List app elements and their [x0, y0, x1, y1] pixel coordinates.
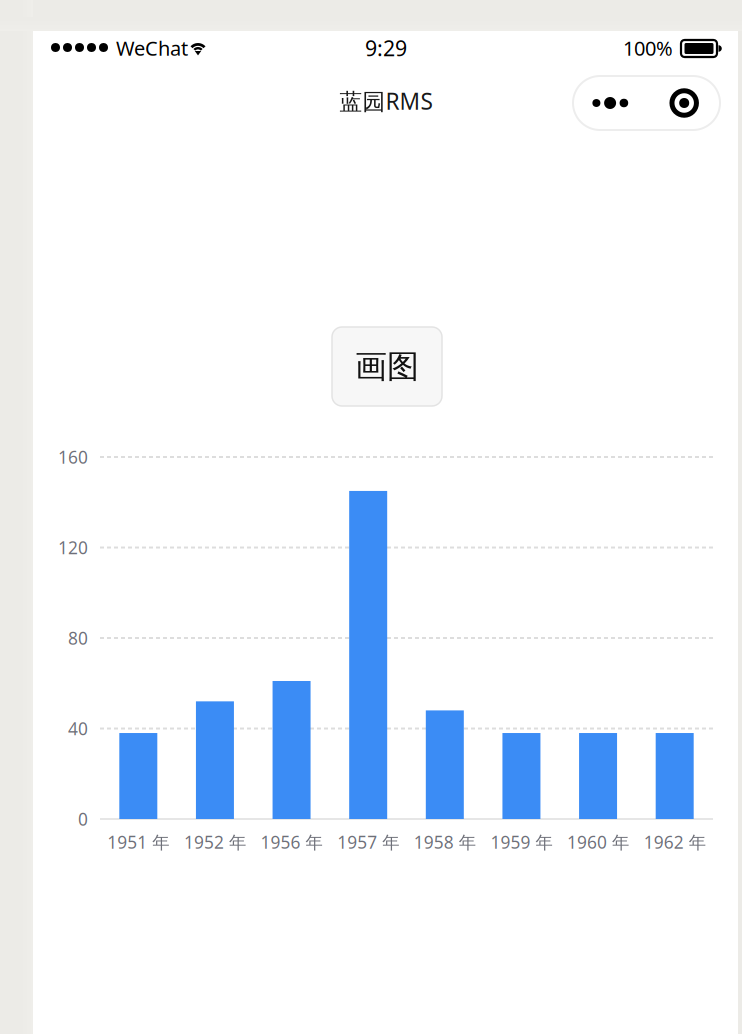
staticText: 40 — [68, 717, 88, 740]
staticText: 160 — [58, 445, 88, 468]
staticText: 1956 年 — [261, 830, 323, 853]
button[interactable]: 画图 — [332, 327, 442, 406]
staticText: 80 — [68, 626, 88, 649]
staticText: 1959 年 — [490, 830, 552, 853]
staticText: 0 — [78, 807, 88, 830]
staticText: 9:29 — [365, 34, 407, 62]
staticText: 1951 年 — [107, 830, 169, 853]
button[interactable]: More options and close — [573, 76, 720, 130]
staticText: 1960 年 — [567, 830, 629, 853]
staticText: 100% — [623, 35, 673, 61]
staticText: 画图 — [355, 347, 419, 386]
staticText: 蓝园RMS — [339, 86, 432, 116]
staticText: 1958 年 — [414, 830, 476, 853]
staticText: WeChat — [116, 35, 188, 61]
staticText: 1952 年 — [184, 830, 246, 853]
staticText: 1957 年 — [337, 830, 399, 853]
staticText: 120 — [58, 536, 88, 559]
staticText: 1962 年 — [644, 830, 706, 853]
